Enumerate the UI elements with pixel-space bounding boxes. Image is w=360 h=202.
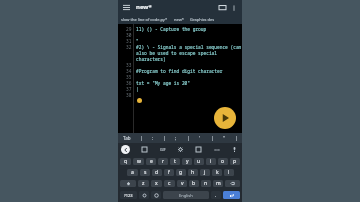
staticText: | [211, 135, 214, 141]
button[interactable]: | [158, 133, 170, 143]
button[interactable]: Run [214, 107, 236, 129]
button[interactable]: | [136, 133, 147, 143]
button[interactable]: More [212, 145, 221, 154]
button[interactable]: slow the line of code.py* [121, 17, 168, 22]
staticText: z [142, 180, 145, 187]
staticText: new* [136, 3, 152, 11]
button[interactable]: f [164, 169, 174, 176]
staticText: u [197, 158, 201, 165]
staticText: | [136, 86, 139, 92]
staticText: : [152, 135, 154, 141]
staticText: g [179, 169, 183, 176]
button[interactable]: More options [229, 3, 238, 12]
staticText: 33 [126, 62, 132, 68]
button[interactable]: ; [170, 133, 182, 143]
button[interactable]: l [224, 169, 234, 176]
staticText: s [144, 169, 147, 176]
staticText: also be used to escape special [136, 50, 217, 56]
staticText: f [168, 169, 170, 176]
button[interactable]: c [164, 180, 175, 187]
button[interactable]: s [140, 169, 150, 176]
staticText: t [174, 158, 176, 165]
staticText: 11) () - Capture the group [136, 26, 207, 32]
button[interactable]: y [182, 158, 192, 165]
staticText: #Program to find digit character [136, 68, 223, 74]
button[interactable]: g [176, 169, 186, 176]
button[interactable]: e [146, 158, 156, 165]
staticText: n [204, 180, 208, 187]
button[interactable]: Back [121, 145, 130, 154]
button[interactable]: | [182, 133, 194, 143]
staticText: v [181, 180, 184, 187]
button[interactable]: new* [174, 17, 184, 22]
button[interactable]: : [147, 133, 158, 143]
button[interactable]: b [189, 180, 199, 187]
staticText: y [186, 158, 189, 165]
button[interactable]: h [188, 169, 198, 176]
button[interactable]: | [230, 133, 242, 143]
button[interactable]: " [218, 133, 230, 143]
staticText: p [233, 158, 237, 165]
staticText: ; [175, 135, 177, 141]
button[interactable]: d [152, 169, 162, 176]
button[interactable]: Enter [223, 191, 240, 199]
button[interactable]: Clipboard [140, 145, 149, 154]
staticText: txt = "My age is 20" [136, 80, 190, 86]
staticText: ?123 [124, 193, 133, 198]
button[interactable]: p [230, 158, 240, 165]
staticText: i [210, 158, 212, 165]
staticText: English [179, 193, 193, 198]
staticText: j [204, 169, 206, 176]
button[interactable]: n [201, 180, 211, 187]
button[interactable]: k [212, 169, 222, 176]
button[interactable]: o [218, 158, 228, 165]
button[interactable]: a [127, 169, 138, 176]
button[interactable]: | [206, 133, 218, 143]
button[interactable]: English [163, 191, 209, 199]
button[interactable]: u [194, 158, 204, 165]
staticText: o [221, 158, 225, 165]
staticText: slow the line of code.py* [121, 17, 168, 22]
button[interactable]: GIF [158, 145, 167, 154]
staticText: 37 [126, 86, 132, 92]
button[interactable]: z [138, 180, 149, 187]
button[interactable]: t [170, 158, 180, 165]
staticText: k [216, 169, 219, 176]
staticText: | [187, 135, 190, 141]
button[interactable]: m [213, 180, 223, 187]
button[interactable]: ?123 [120, 191, 137, 199]
staticText: " [223, 135, 225, 141]
staticText: 32 [126, 44, 132, 50]
staticText: #2) \ - Signals a special sequence (can [136, 44, 242, 50]
button[interactable]: x [151, 180, 162, 187]
button[interactable]: Tab [118, 133, 136, 143]
button[interactable]: Settings [176, 145, 185, 154]
button[interactable]: Language [151, 191, 161, 199]
button[interactable]: r [158, 158, 168, 165]
staticText: 36 [126, 80, 132, 86]
button[interactable]: Emoji [139, 191, 149, 199]
staticText: 35 [126, 74, 132, 80]
staticText: w [137, 158, 141, 165]
button[interactable]: q [120, 158, 131, 165]
button[interactable]: w [133, 158, 144, 165]
staticText: | [140, 135, 143, 141]
button[interactable]: v [177, 180, 187, 187]
staticText: | [163, 135, 166, 141]
staticText: new* [174, 17, 184, 22]
button[interactable]: ' [194, 133, 206, 143]
staticText: e [150, 158, 153, 165]
button[interactable]: Folder [217, 2, 227, 12]
button[interactable]: Voice input [230, 145, 239, 154]
button[interactable]: j [200, 169, 210, 176]
button[interactable]: Translate [194, 145, 203, 154]
staticText: r [162, 158, 165, 165]
staticText: GIF [160, 147, 166, 152]
button[interactable]: Graphics des [190, 17, 215, 22]
staticText: h [191, 169, 195, 176]
button[interactable]: . [211, 191, 221, 199]
button[interactable]: Menu [122, 3, 131, 12]
button[interactable]: Shift [120, 180, 136, 187]
button[interactable]: i [206, 158, 216, 165]
button[interactable]: Backspace [225, 180, 240, 187]
